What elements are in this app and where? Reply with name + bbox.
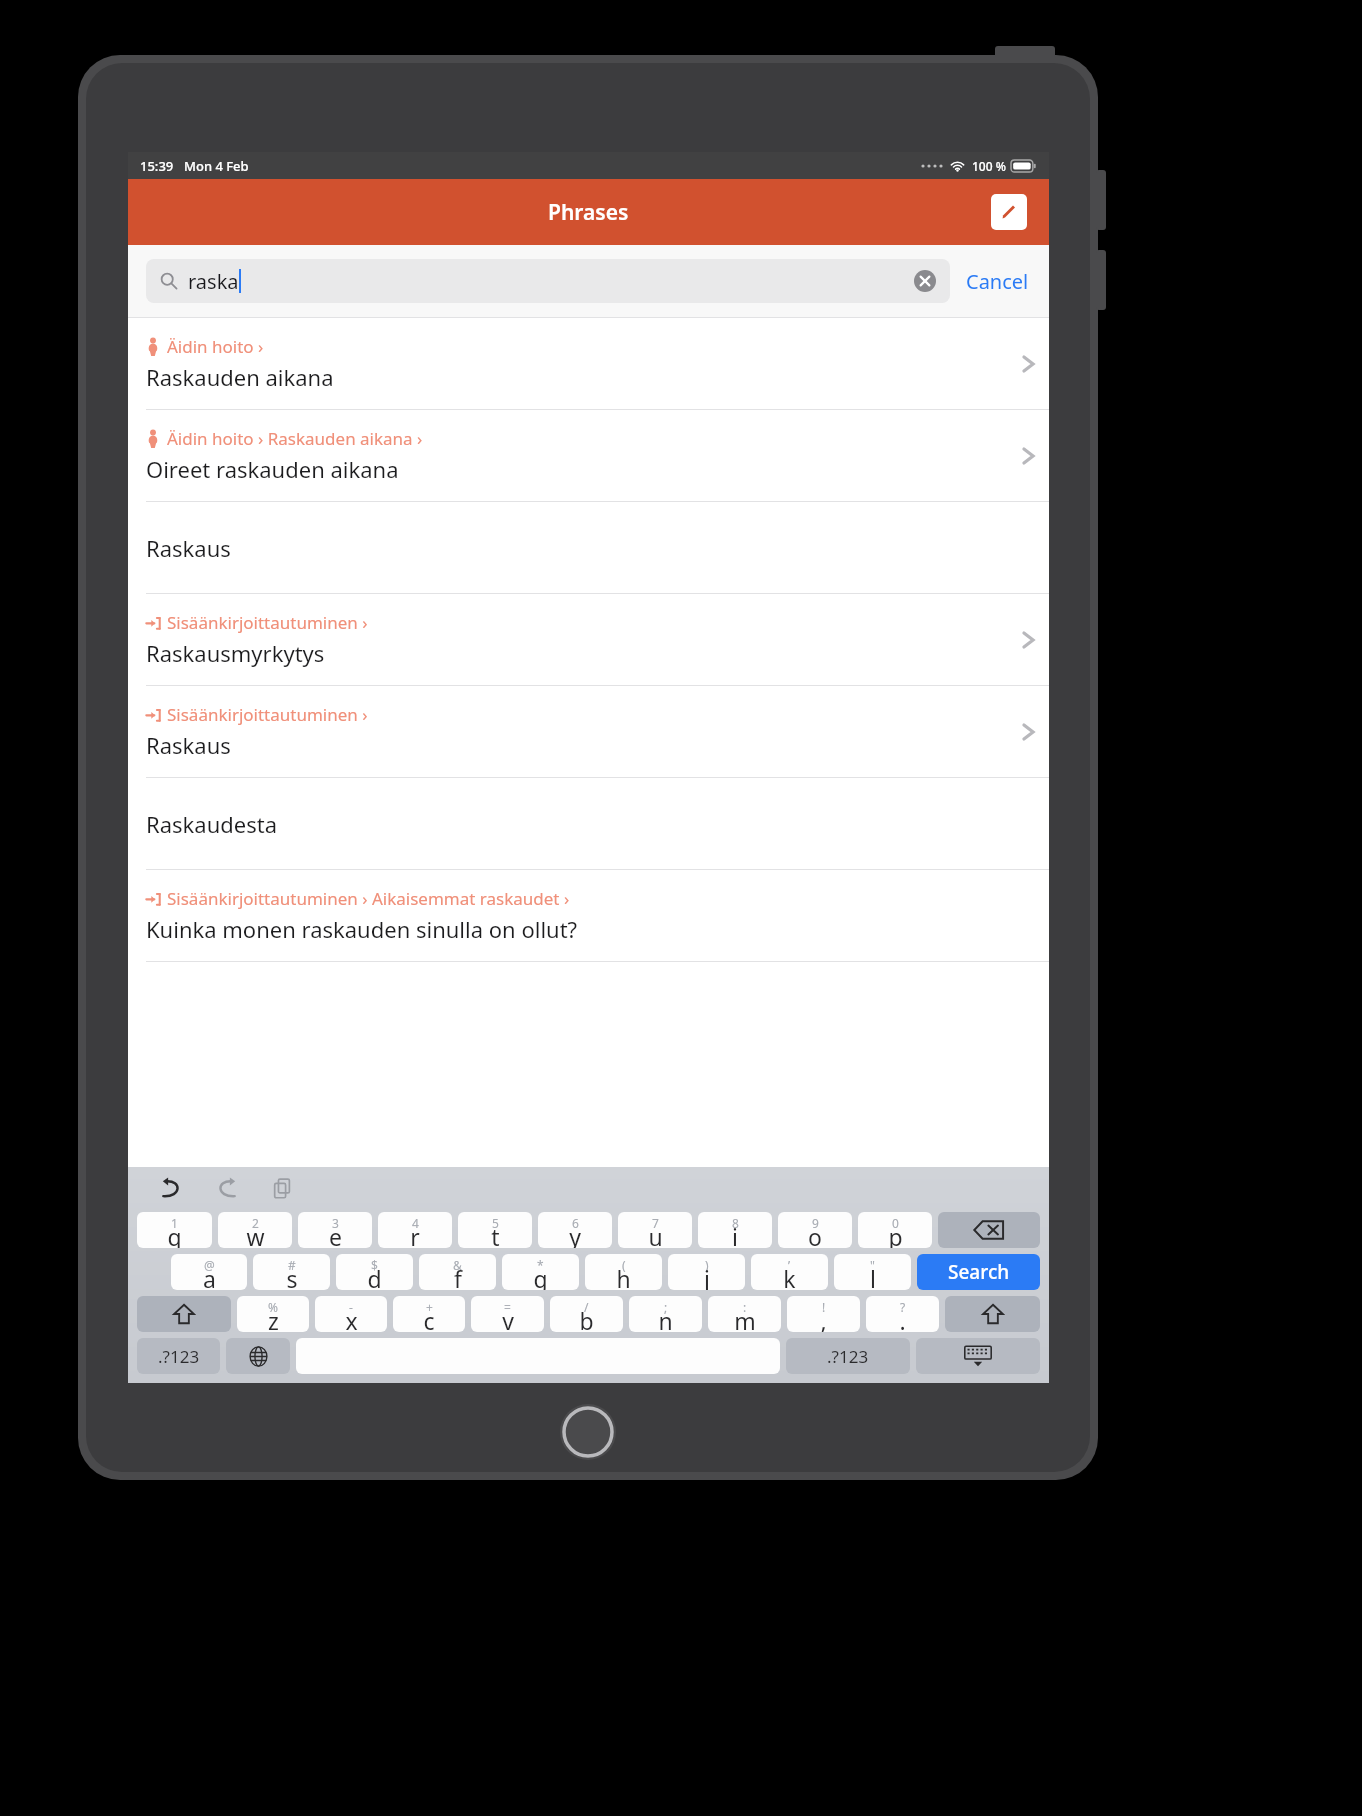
button[interactable]: 7: [618, 1212, 692, 1248]
staticText: w: [246, 1221, 265, 1248]
staticText: $: [371, 1257, 378, 1273]
button[interactable]: .?123: [137, 1338, 220, 1374]
button[interactable]: #: [253, 1254, 330, 1290]
staticText: ’: [788, 1257, 791, 1273]
staticText: t: [491, 1221, 500, 1248]
button[interactable]: ): [668, 1254, 745, 1290]
button[interactable]: .?123: [786, 1338, 910, 1374]
button[interactable]: 4: [378, 1212, 452, 1248]
button[interactable]: (: [585, 1254, 662, 1290]
staticText: Raskaus: [146, 730, 231, 760]
staticText: o: [808, 1221, 822, 1248]
staticText: d: [367, 1263, 382, 1290]
staticText: Sisäänkirjoittautuminen › Aikaisemmat ra…: [167, 887, 570, 910]
staticText: 15:39: [140, 157, 174, 175]
staticText: m: [734, 1305, 756, 1332]
button[interactable]: 3: [298, 1212, 372, 1248]
button[interactable]: ?: [866, 1296, 939, 1332]
staticText: Oireet raskauden aikana: [146, 454, 399, 484]
button[interactable]: :: [708, 1296, 781, 1332]
staticText: Raskauden aikana: [146, 362, 334, 392]
staticText: @: [204, 1257, 215, 1273]
staticText: h: [616, 1263, 631, 1290]
staticText: k: [783, 1263, 796, 1290]
staticText: r: [410, 1221, 420, 1248]
staticText: !: [822, 1299, 826, 1315]
staticText: ?: [900, 1299, 906, 1315]
staticText: 2: [252, 1215, 259, 1231]
staticText: l: [870, 1263, 876, 1290]
button[interactable]: Backspace: [938, 1212, 1040, 1248]
staticText: ): [705, 1257, 709, 1273]
button[interactable]: 6: [538, 1212, 612, 1248]
button[interactable]: *: [502, 1254, 579, 1290]
button[interactable]: 9: [778, 1212, 852, 1248]
button[interactable]: Äidin hoito ›: [128, 318, 1049, 410]
button[interactable]: $: [336, 1254, 413, 1290]
button[interactable]: Change keyboard: [226, 1338, 290, 1374]
button[interactable]: 2: [218, 1212, 292, 1248]
button[interactable]: &: [419, 1254, 496, 1290]
button[interactable]: 0: [858, 1212, 932, 1248]
button[interactable]: Hide keyboard: [916, 1338, 1040, 1374]
button[interactable]: Sisäänkirjoittautuminen ›: [128, 594, 1049, 686]
staticText: 1: [171, 1215, 178, 1231]
staticText: .: [899, 1305, 906, 1332]
button[interactable]: raska: [146, 259, 950, 303]
button[interactable]: /: [550, 1296, 623, 1332]
button[interactable]: @: [171, 1254, 247, 1290]
staticText: Kuinka monen raskauden sinulla on ollut?: [146, 914, 578, 944]
staticText: y: [569, 1221, 581, 1248]
staticText: p: [888, 1221, 903, 1248]
staticText: Phrases: [548, 198, 629, 227]
staticText: b: [579, 1305, 594, 1332]
button[interactable]: Äidin hoito › Raskauden aikana ›: [128, 410, 1049, 502]
staticText: e: [329, 1221, 342, 1248]
staticText: %: [268, 1299, 278, 1315]
button[interactable]: Cancel: [950, 268, 1031, 295]
staticText: +: [426, 1299, 433, 1315]
button[interactable]: Search: [917, 1254, 1040, 1290]
button[interactable]: Raskaudesta: [128, 778, 1049, 870]
staticText: raska: [188, 268, 239, 295]
button[interactable]: 1: [137, 1212, 212, 1248]
button[interactable]: 8: [698, 1212, 772, 1248]
staticText: ": [870, 1257, 875, 1273]
staticText: 8: [732, 1215, 739, 1231]
staticText: Äidin hoito › Raskauden aikana ›: [167, 427, 423, 450]
button[interactable]: -: [315, 1296, 387, 1332]
button[interactable]: +: [393, 1296, 465, 1332]
staticText: 4: [412, 1215, 419, 1231]
staticText: Sisäänkirjoittautuminen ›: [167, 611, 368, 634]
staticText: Raskausmyrkytys: [146, 638, 325, 668]
staticText: :: [743, 1299, 747, 1315]
button[interactable]: Shift: [945, 1296, 1040, 1332]
button[interactable]: Paste: [266, 1171, 300, 1205]
button[interactable]: Raskaus: [128, 502, 1049, 594]
staticText: #: [288, 1257, 296, 1273]
button[interactable]: ’: [751, 1254, 828, 1290]
staticText: Cancel: [966, 268, 1029, 295]
staticText: .?123: [827, 1345, 869, 1368]
button[interactable]: =: [471, 1296, 544, 1332]
button[interactable]: !: [787, 1296, 860, 1332]
button[interactable]: Edit: [991, 194, 1027, 230]
button[interactable]: Undo: [154, 1171, 188, 1205]
button[interactable]: Shift: [137, 1296, 231, 1332]
staticText: Search: [948, 1259, 1010, 1285]
button[interactable]: Home: [560, 1404, 616, 1460]
button[interactable]: %: [237, 1296, 309, 1332]
staticText: 5: [492, 1215, 499, 1231]
staticText: 6: [572, 1215, 579, 1231]
staticText: f: [454, 1263, 462, 1290]
button[interactable]: ": [834, 1254, 911, 1290]
button[interactable]: 5: [458, 1212, 532, 1248]
button[interactable]: Clear text: [914, 270, 936, 292]
button[interactable]: Sisäänkirjoittautuminen › Aikaisemmat ra…: [128, 870, 1049, 962]
button[interactable]: Sisäänkirjoittautuminen ›: [128, 686, 1049, 778]
button[interactable]: Redo: [210, 1171, 244, 1205]
staticText: j: [704, 1263, 710, 1290]
button[interactable]: ;: [629, 1296, 702, 1332]
staticText: &: [453, 1257, 462, 1273]
